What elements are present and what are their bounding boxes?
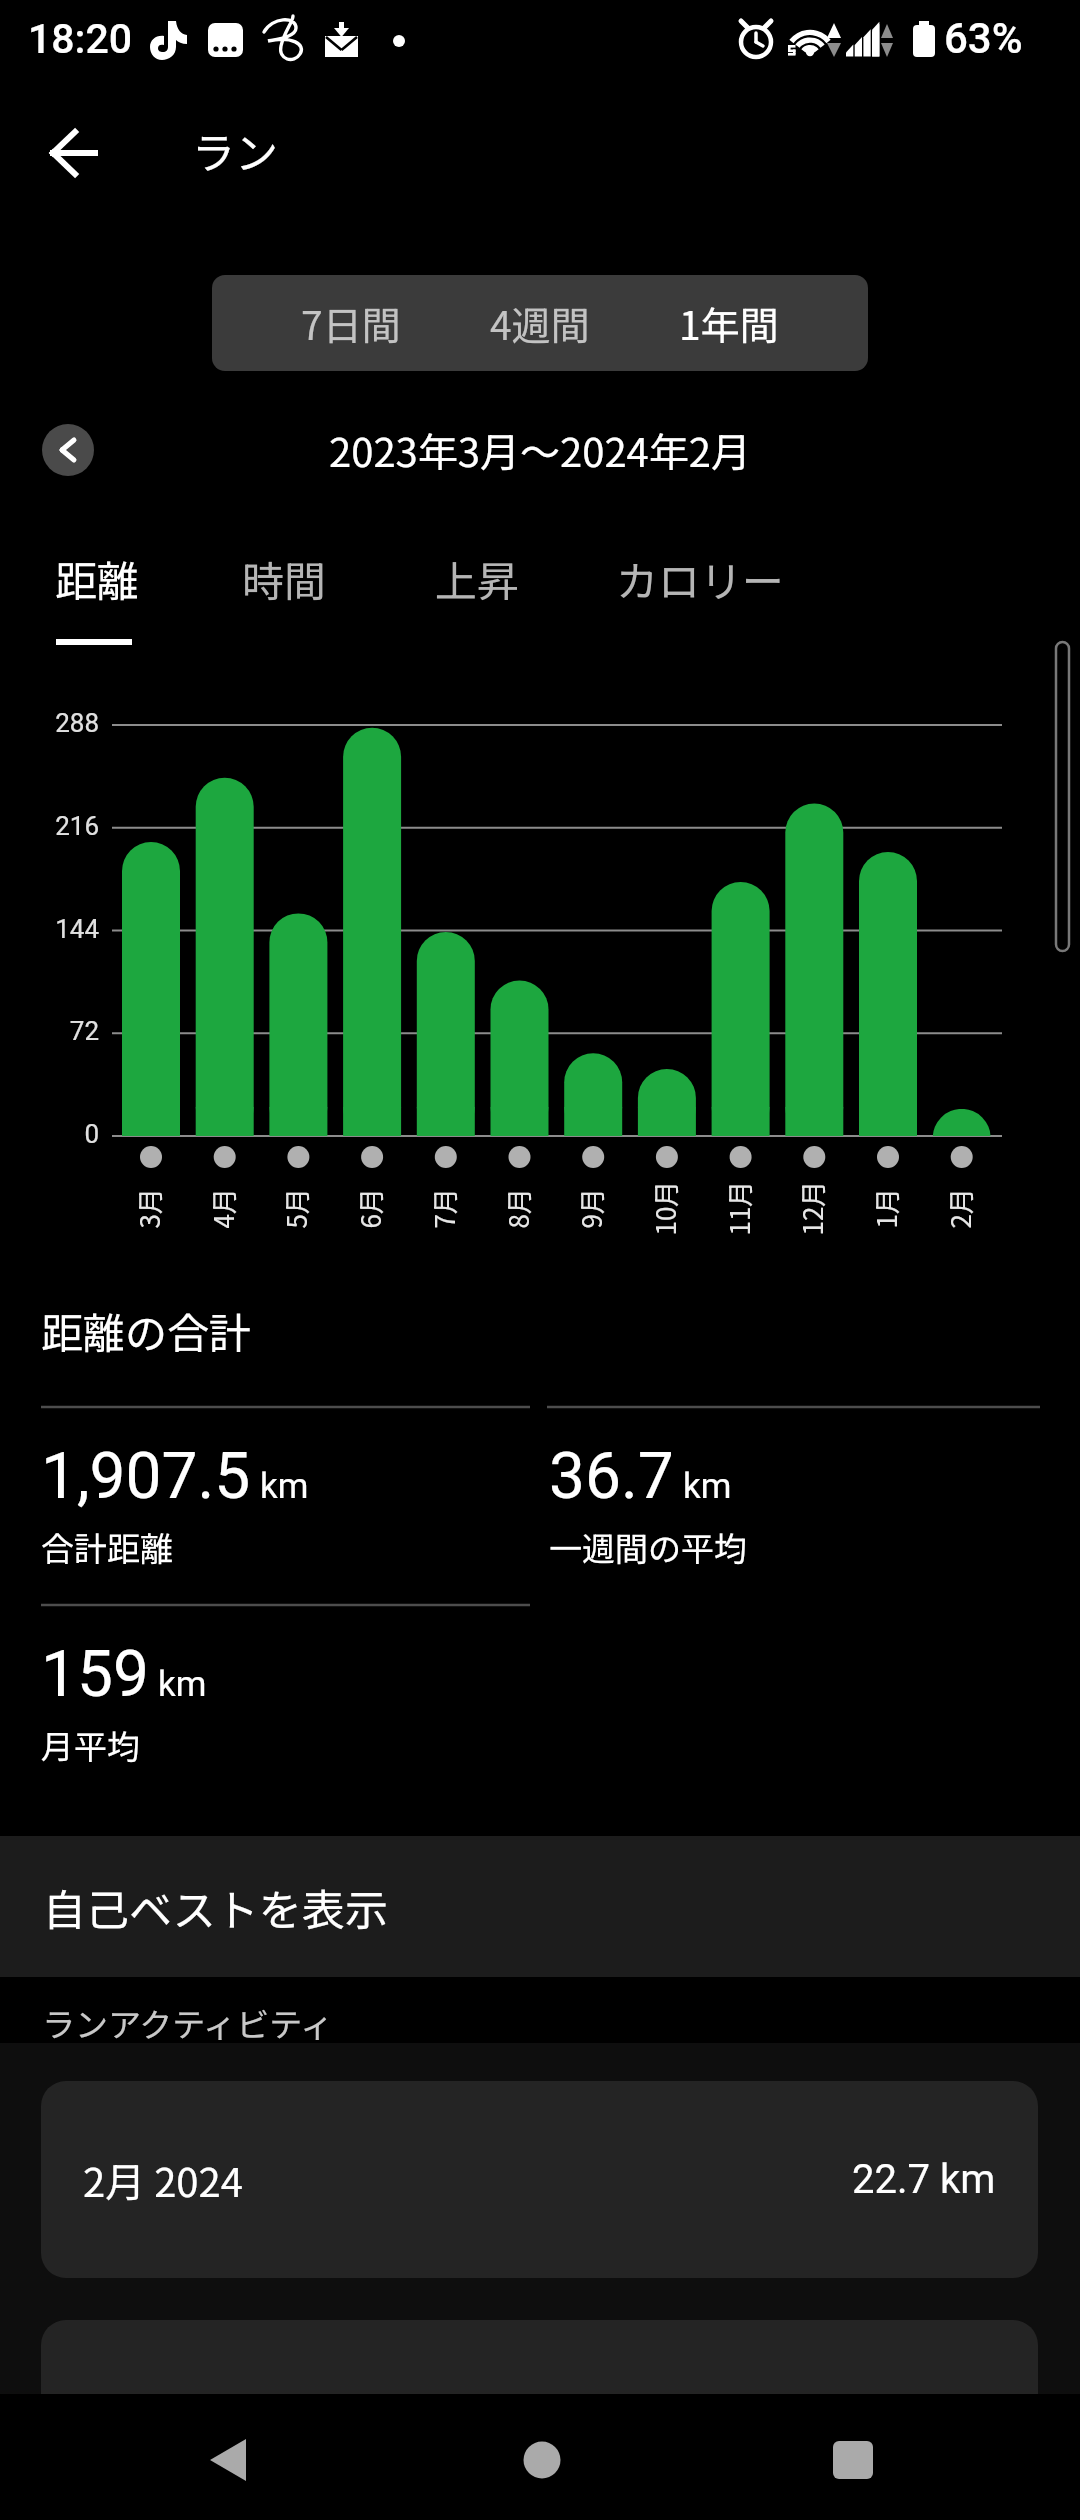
staticText: 18:20: [28, 15, 133, 63]
staticText: 3月: [129, 1187, 167, 1228]
staticText: 自己ベストを表示: [43, 1876, 388, 1938]
staticText: 4月: [203, 1187, 241, 1228]
staticText: 0: [0, 1119, 99, 1149]
staticText: km: [158, 1664, 207, 1705]
staticText: 36.7: [549, 1439, 674, 1514]
staticText: 一週間の平均: [549, 1523, 747, 1571]
staticText: カロリー: [616, 548, 785, 609]
staticText: 11月: [719, 1180, 757, 1235]
staticText: 1,907.5: [41, 1439, 251, 1514]
button[interactable]: カロリー: [586, 520, 810, 650]
staticText: 1月: [866, 1187, 904, 1228]
button[interactable]: Back: [24, 104, 128, 208]
staticText: 72: [0, 1016, 99, 1046]
staticText: 5月: [276, 1187, 314, 1228]
button[interactable]: Previous period: [42, 424, 94, 476]
staticText: 159: [41, 1637, 149, 1712]
staticText: 7日間: [301, 295, 401, 351]
staticText: 9月: [571, 1187, 609, 1228]
staticText: 4週間: [490, 295, 590, 351]
staticText: 上昇: [435, 548, 520, 609]
staticText: 10月: [645, 1180, 683, 1235]
staticText: 2月 2024: [83, 2151, 243, 2209]
staticText: ランアクティビティ: [42, 1999, 334, 2047]
staticText: 144: [0, 914, 99, 944]
staticText: 7月: [424, 1187, 462, 1228]
staticText: ラン: [192, 119, 278, 181]
staticText: 距離: [55, 548, 140, 609]
staticText: 216: [0, 811, 99, 841]
staticText: 距離の合計: [41, 1300, 252, 1361]
button[interactable]: 自己ベストを表示: [0, 1836, 1080, 1977]
button[interactable]: Back: [168, 2412, 288, 2502]
staticText: 月平均: [41, 1721, 140, 1769]
button[interactable]: Recent apps: [793, 2412, 913, 2502]
staticText: 2023年3月〜2024年2月: [0, 421, 1080, 479]
button[interactable]: 4週間: [490, 275, 590, 371]
button[interactable]: 上昇: [405, 520, 577, 650]
staticText: 1年間: [679, 295, 779, 351]
staticText: 288: [0, 708, 99, 738]
staticText: 2月: [940, 1187, 978, 1228]
staticText: km: [260, 1466, 309, 1507]
staticText: 8月: [498, 1187, 536, 1228]
button[interactable]: 距離: [25, 520, 197, 650]
button[interactable]: Home: [482, 2412, 602, 2502]
button[interactable]: 時間: [212, 520, 384, 650]
staticText: km: [683, 1466, 732, 1507]
button[interactable]: [41, 2320, 1038, 2460]
staticText: 6月: [350, 1187, 388, 1228]
button[interactable]: 1年間: [679, 275, 779, 371]
staticText: 63%: [944, 14, 1023, 63]
staticText: 12月: [792, 1180, 830, 1235]
staticText: 合計距離: [41, 1523, 173, 1571]
button[interactable]: 2月 2024: [41, 2081, 1038, 2278]
staticText: 22.7 km: [852, 2156, 996, 2203]
staticText: 時間: [242, 548, 327, 609]
button[interactable]: 7日間: [301, 275, 401, 371]
